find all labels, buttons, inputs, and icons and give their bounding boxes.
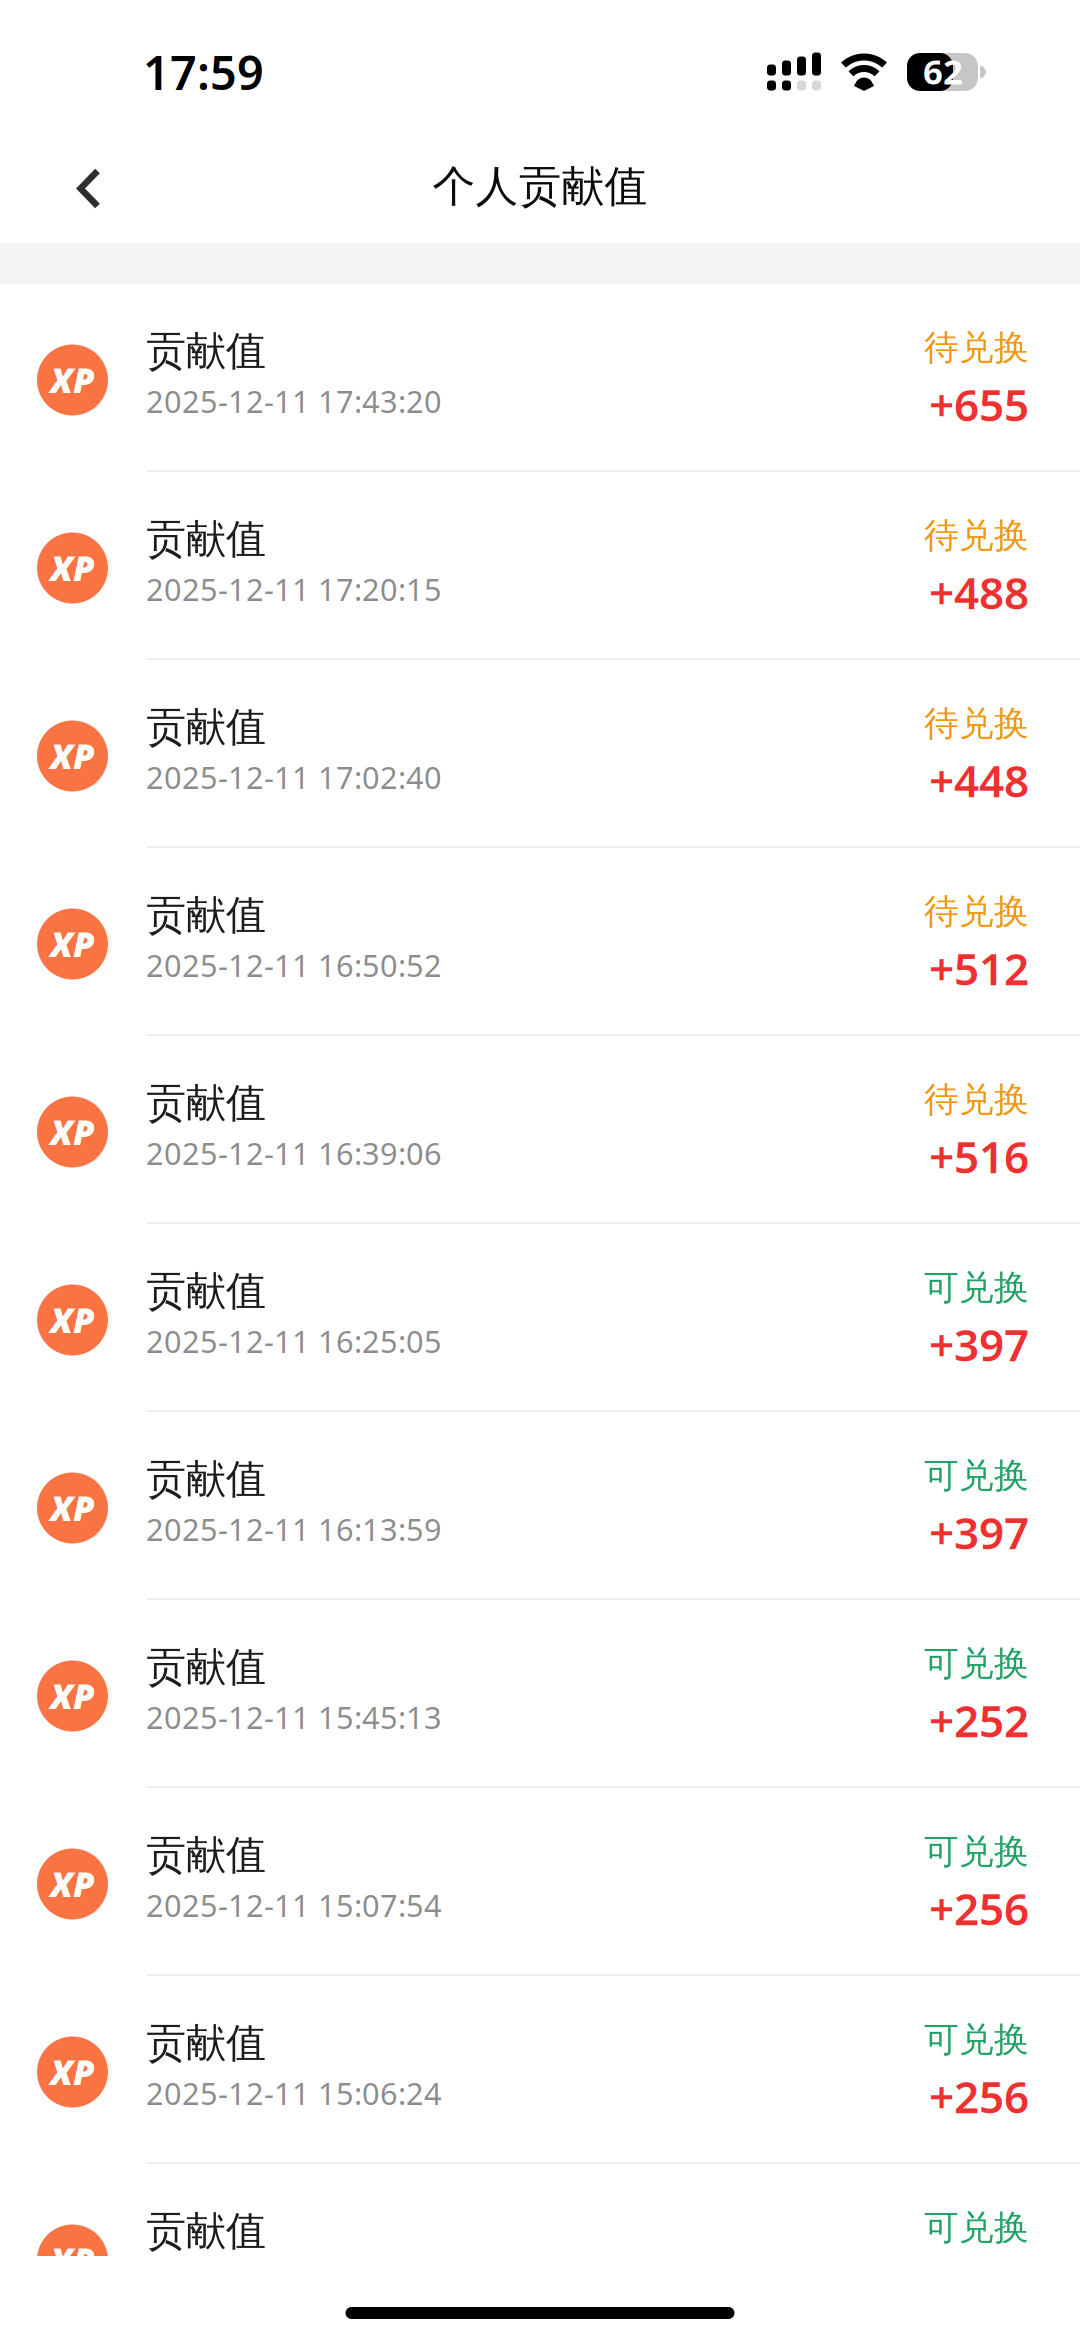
staticText: 个人贡献值 <box>432 160 647 213</box>
staticText: 2025-12-11 16:50:52 <box>146 945 442 985</box>
staticText: +488 <box>929 563 1029 621</box>
button[interactable]: XP <box>0 472 1080 658</box>
staticText: 待兑换 <box>924 702 1029 745</box>
staticText: 贡献值 <box>146 1455 266 1504</box>
staticText: XP <box>50 1485 95 1531</box>
staticText: +256 <box>929 2067 1029 2125</box>
staticText: 待兑换 <box>924 1078 1029 1121</box>
button[interactable]: XP <box>0 1224 1080 1410</box>
staticText: XP <box>50 1297 95 1343</box>
staticText: 待兑换 <box>924 514 1029 557</box>
staticText: +252 <box>929 1691 1029 1749</box>
staticText: 2025-12-11 17:20:15 <box>146 569 442 609</box>
staticText: XP <box>50 357 95 403</box>
button[interactable]: Back <box>0 142 140 244</box>
staticText: 贡献值 <box>146 2019 266 2068</box>
staticText: XP <box>50 2049 95 2095</box>
staticText: +397 <box>929 1315 1029 1373</box>
staticText: XP <box>50 1861 95 1907</box>
staticText: +397 <box>929 1503 1029 1561</box>
button[interactable]: XP <box>0 848 1080 1034</box>
button[interactable]: XP <box>0 1600 1080 1786</box>
staticText: XP <box>50 2237 95 2283</box>
staticText: 17:59 <box>143 41 264 103</box>
staticText: 贡献值 <box>146 1643 266 1692</box>
staticText: +512 <box>929 939 1029 997</box>
staticText: XP <box>50 1673 95 1719</box>
staticText: 贡献值 <box>146 891 266 940</box>
staticText: 2025-12-11 16:25:05 <box>146 1321 442 1361</box>
button[interactable]: XP <box>0 284 1080 470</box>
staticText: 贡献值 <box>146 515 266 564</box>
staticText: +256 <box>929 1879 1029 1937</box>
staticText: 可兑换 <box>924 2206 1029 2249</box>
button[interactable]: XP <box>0 1788 1080 1974</box>
staticText: 贡献值 <box>146 327 266 376</box>
staticText: 2025-12-11 16:39:06 <box>146 1133 442 1173</box>
staticText: XP <box>50 733 95 779</box>
staticText: 可兑换 <box>924 1642 1029 1685</box>
staticText: 2025-12-11 17:02:40 <box>146 757 442 797</box>
staticText: 2025-12-11 16:13:59 <box>146 1509 442 1549</box>
staticText: 贡献值 <box>146 2207 266 2256</box>
staticText: 可兑换 <box>924 1454 1029 1497</box>
staticText: XP <box>50 921 95 967</box>
staticText: 待兑换 <box>924 326 1029 369</box>
staticText: 贡献值 <box>146 1267 266 1316</box>
staticText: 可兑换 <box>924 1266 1029 1309</box>
staticText: +448 <box>929 751 1029 809</box>
staticText: 贡献值 <box>146 703 266 752</box>
staticText: 可兑换 <box>924 2018 1029 2061</box>
staticText: 2025-12-11 15:06:24 <box>146 2073 442 2113</box>
staticText: XP <box>50 545 95 591</box>
staticText: 待兑换 <box>924 890 1029 933</box>
staticText: XP <box>50 1109 95 1155</box>
button[interactable]: XP <box>0 1976 1080 2162</box>
staticText: 2025-12-11 15:07:54 <box>146 1885 442 1925</box>
button[interactable]: XP <box>0 1036 1080 1222</box>
staticText: 2025-12-11 17:43:20 <box>146 381 442 421</box>
staticText: +655 <box>929 375 1029 433</box>
staticText: 贡献值 <box>146 1079 266 1128</box>
staticText: 可兑换 <box>924 1830 1029 1873</box>
button[interactable]: XP <box>0 1412 1080 1598</box>
staticText: 贡献值 <box>146 1831 266 1880</box>
staticText: +516 <box>929 1127 1029 1185</box>
staticText: 62 <box>923 48 963 94</box>
staticText: 2025-12-11 15:45:13 <box>146 1697 442 1737</box>
button[interactable]: XP <box>0 2164 1080 2341</box>
button[interactable]: XP <box>0 660 1080 846</box>
